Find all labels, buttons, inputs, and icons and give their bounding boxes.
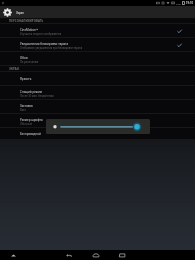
- button[interactable]: Заставка: [0, 100, 195, 114]
- staticText: Улучшить скорость изображения: [20, 32, 62, 35]
- staticText: Уведомления блокировки экрана: [20, 42, 69, 46]
- staticText: После 30 мин. бездействия: [20, 94, 54, 97]
- button[interactable]: Обои: [0, 52, 195, 66]
- staticText: Яркость: [20, 77, 32, 81]
- staticText: Обычный: [20, 122, 32, 125]
- staticText: Заставка: [20, 104, 33, 108]
- button[interactable]: Recent apps: [116, 250, 128, 260]
- other: Enabled: [177, 43, 182, 48]
- button[interactable]: Размер шрифта: [0, 114, 195, 128]
- button[interactable]: CineMotion™: [0, 24, 195, 38]
- staticText: По умолчанию: [20, 60, 39, 63]
- staticText: 19:10: [186, 1, 194, 5]
- staticText: Размер шрифта: [20, 118, 43, 122]
- button[interactable]: Спящий режим: [0, 86, 195, 100]
- staticText: CineMotion™: [20, 28, 39, 32]
- button[interactable]: Уведомления блокировки экрана: [0, 38, 195, 52]
- button[interactable]: Беспроводной: [0, 128, 195, 140]
- staticText: Беспроводной: [20, 132, 41, 136]
- staticText: Обои: [20, 56, 28, 60]
- button[interactable]: Яркость: [0, 72, 195, 86]
- staticText: ЭКРАН: [9, 67, 19, 71]
- staticText: Отображать уведомления при блокировке эк…: [20, 46, 83, 49]
- staticText: Экран: [16, 11, 24, 15]
- staticText: ПЕРСОНАЛИЗИРОВАТЬ: [9, 19, 44, 23]
- other: Enabled: [177, 29, 182, 34]
- button[interactable]: Home: [90, 250, 102, 260]
- staticText: 34%: [176, 2, 181, 5]
- other: Settings: [3, 8, 12, 17]
- button[interactable]: Brightness slider: [46, 119, 150, 134]
- button[interactable]: Back: [63, 250, 75, 260]
- staticText: Basic: [20, 108, 27, 111]
- staticText: Спящий режим: [20, 90, 43, 94]
- button[interactable]: Expand navigation bar: [10, 252, 17, 259]
